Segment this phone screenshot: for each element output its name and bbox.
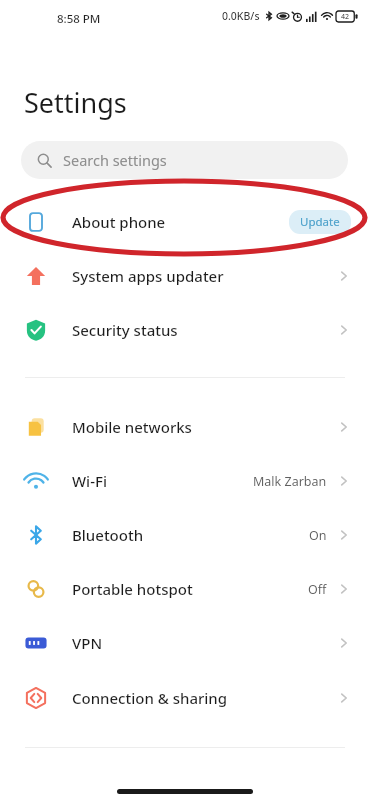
button[interactable]: About phone <box>0 204 369 240</box>
button[interactable]: Security status <box>0 312 369 348</box>
staticText: Mobile networks <box>72 417 192 437</box>
staticText: Update <box>300 214 340 230</box>
staticText: System apps updater <box>72 266 224 286</box>
staticText: Connection & sharing <box>72 688 228 708</box>
staticText: About phone <box>72 212 166 232</box>
staticText: Search settings <box>63 150 167 170</box>
staticText: On <box>309 527 327 544</box>
button[interactable]: Search settings <box>21 141 348 179</box>
button[interactable]: Wi-Fi <box>0 463 369 499</box>
staticText: Off <box>308 581 327 598</box>
button[interactable]: Connection & sharing <box>0 680 369 716</box>
button[interactable]: Bluetooth <box>0 517 369 553</box>
button[interactable]: Update <box>289 210 351 234</box>
staticText: 0.0KB/s <box>222 9 260 23</box>
staticText: 42 <box>341 12 350 22</box>
staticText: 8:58 PM <box>57 11 101 27</box>
staticText: Portable hotspot <box>72 579 193 599</box>
staticText: Bluetooth <box>72 525 144 545</box>
staticText: VPN <box>72 633 103 653</box>
button[interactable]: Mobile networks <box>0 409 369 445</box>
staticText: Security status <box>72 320 178 340</box>
button[interactable]: Portable hotspot <box>0 571 369 607</box>
staticText: Malk Zarban <box>253 473 327 490</box>
staticText: Settings <box>24 84 127 121</box>
button[interactable]: System apps updater <box>0 258 369 294</box>
button[interactable]: VPN <box>0 625 369 661</box>
staticText: Wi-Fi <box>72 471 107 491</box>
